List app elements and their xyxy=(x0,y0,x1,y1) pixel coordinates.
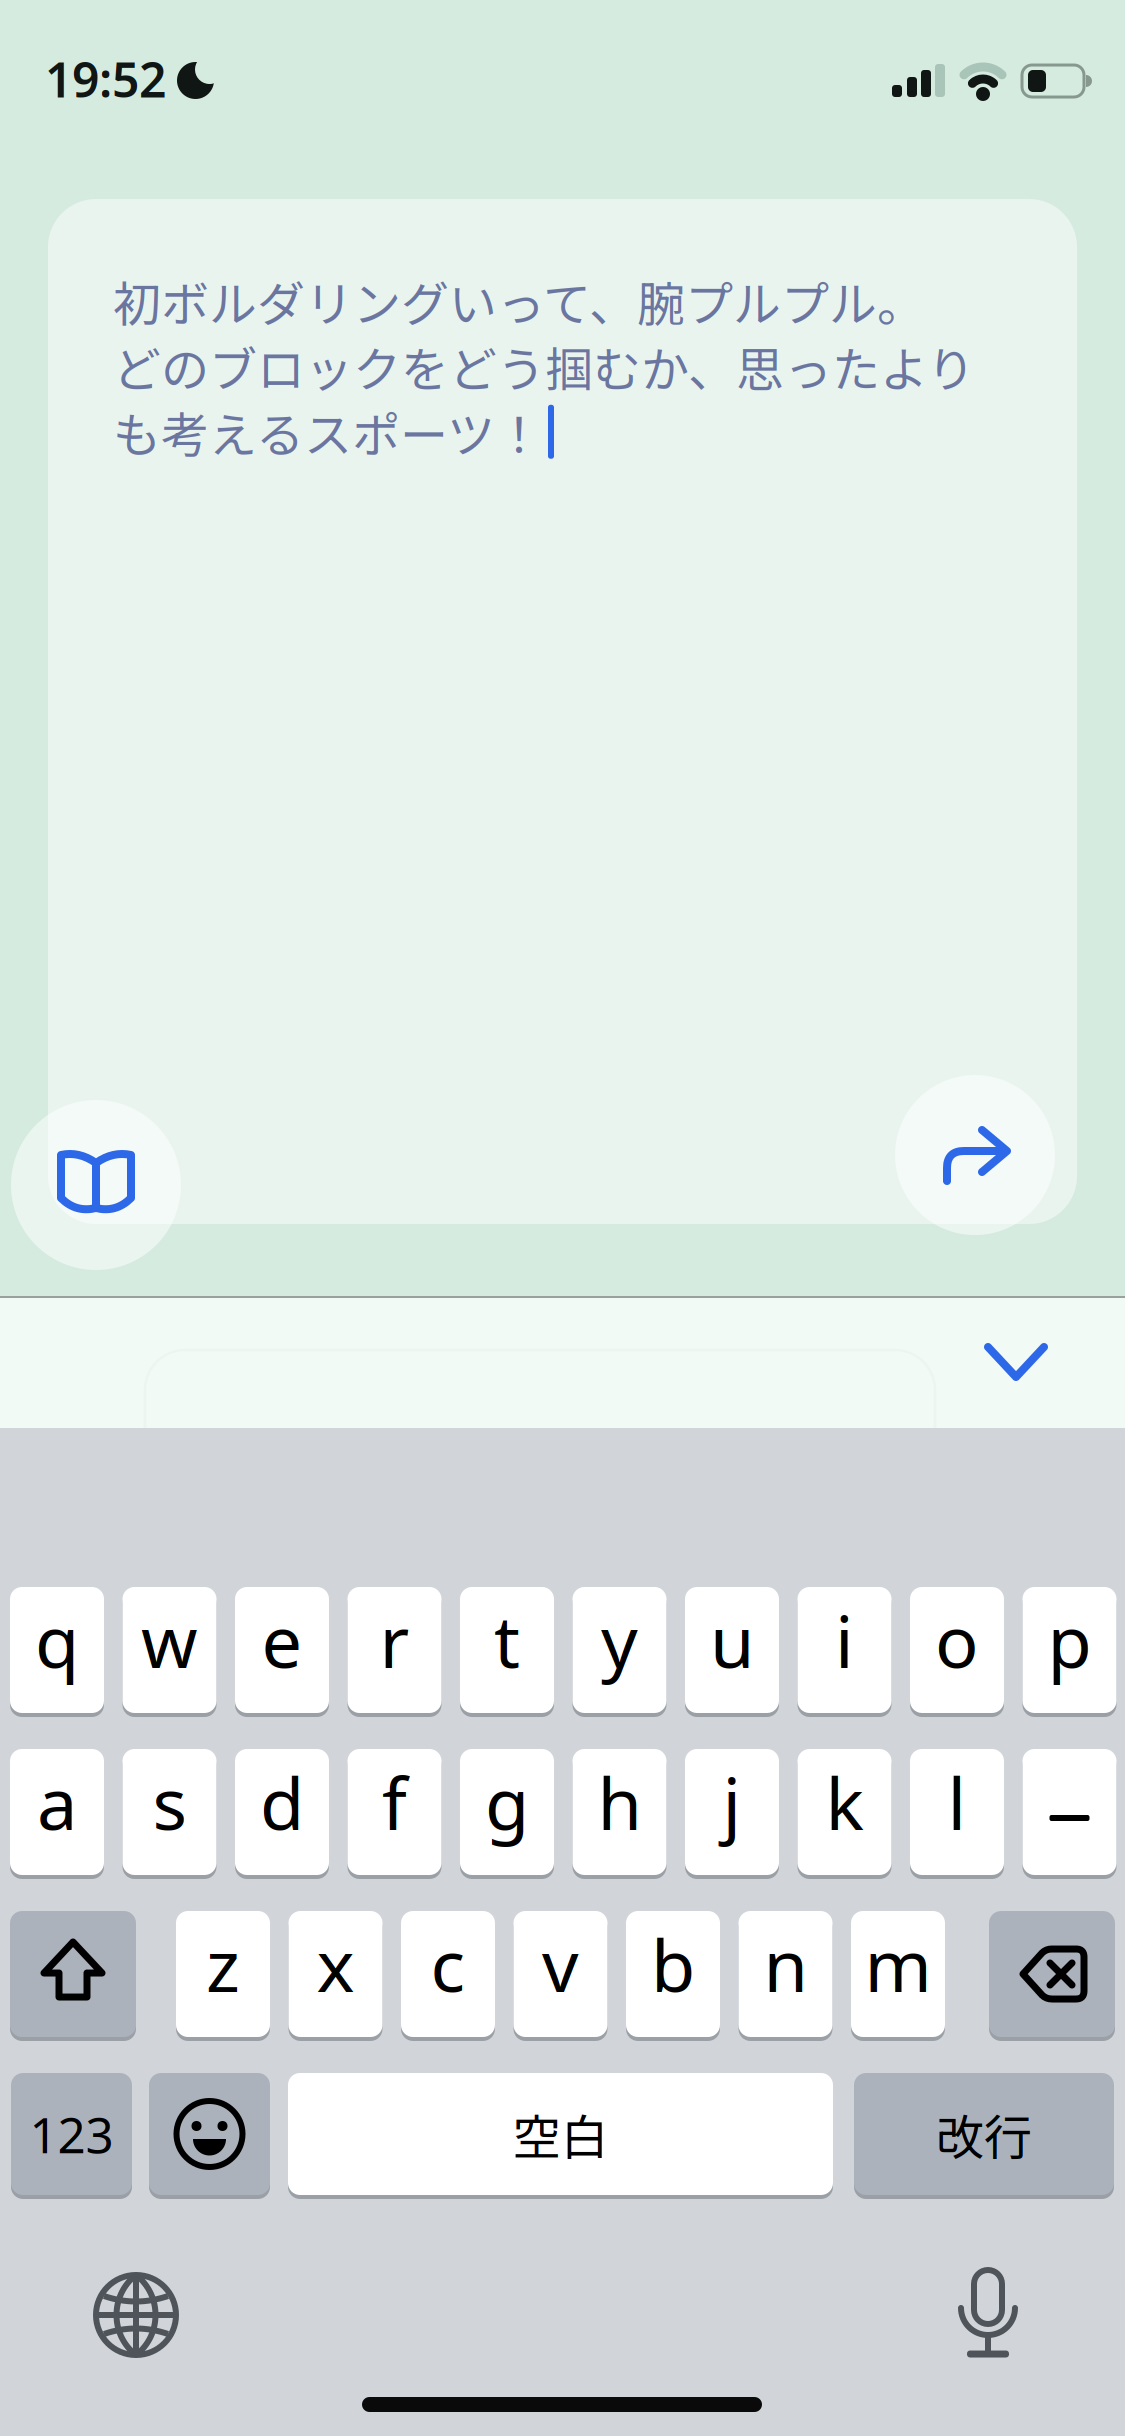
staticText: も考えるスポーツ！ xyxy=(113,397,543,466)
staticText: t xyxy=(494,1592,520,1688)
button[interactable]: e xyxy=(235,1587,329,1713)
button[interactable]: 改行 xyxy=(854,2073,1114,2195)
button[interactable]: x xyxy=(288,1911,382,2037)
staticText: 123 xyxy=(29,2101,113,2167)
button[interactable]: o xyxy=(910,1587,1004,1713)
button[interactable]: Shift xyxy=(10,1911,136,2037)
button[interactable]: q xyxy=(10,1587,104,1713)
button[interactable]: s xyxy=(122,1749,216,1875)
staticText: u xyxy=(710,1592,754,1688)
button[interactable]: y xyxy=(572,1587,666,1713)
staticText: d xyxy=(260,1754,304,1850)
button[interactable]: 空白 xyxy=(288,2073,833,2195)
button[interactable]: p xyxy=(1022,1587,1116,1713)
button[interactable]: m xyxy=(851,1911,945,2037)
staticText: a xyxy=(37,1754,77,1850)
staticText: h xyxy=(597,1754,641,1850)
staticText: g xyxy=(485,1754,529,1850)
button[interactable]: l xyxy=(910,1749,1004,1875)
staticText: k xyxy=(825,1754,863,1850)
button[interactable]: Delete xyxy=(989,1911,1115,2037)
staticText: q xyxy=(35,1592,79,1688)
button[interactable]: Dictation xyxy=(938,2261,1038,2361)
button[interactable]: a xyxy=(10,1749,104,1875)
button[interactable]: t xyxy=(460,1587,554,1713)
button[interactable]: v xyxy=(513,1911,607,2037)
staticText: p xyxy=(1047,1592,1091,1688)
button[interactable]: c xyxy=(401,1911,495,2037)
staticText: 初ボルダリングいって、腕プルプル。 xyxy=(113,266,925,335)
button[interactable]: ー xyxy=(1022,1749,1116,1875)
staticText: n xyxy=(763,1916,807,2012)
button[interactable]: i xyxy=(797,1587,891,1713)
staticText: i xyxy=(835,1592,854,1688)
button[interactable]: d xyxy=(235,1749,329,1875)
button[interactable]: n xyxy=(738,1911,832,2037)
button[interactable]: Emoji xyxy=(149,2073,270,2195)
button[interactable]: f xyxy=(347,1749,441,1875)
staticText: z xyxy=(206,1916,240,2012)
button[interactable]: k xyxy=(797,1749,891,1875)
staticText: y xyxy=(601,1592,638,1688)
staticText: j xyxy=(722,1754,741,1850)
button[interactable]: 123 xyxy=(11,2073,132,2195)
staticText: 19:52 xyxy=(45,47,166,111)
staticText: どのブロックをどう掴むか、思ったより xyxy=(113,331,975,401)
staticText: m xyxy=(864,1916,931,2012)
staticText: s xyxy=(152,1754,186,1850)
staticText: l xyxy=(947,1754,966,1850)
staticText: w xyxy=(141,1592,198,1688)
staticText: 改行 xyxy=(936,2099,1032,2169)
button[interactable]: r xyxy=(347,1587,441,1713)
button[interactable]: b xyxy=(626,1911,720,2037)
button[interactable]: w xyxy=(122,1587,216,1713)
button[interactable]: g xyxy=(460,1749,554,1875)
button[interactable]: j xyxy=(685,1749,779,1875)
staticText: v xyxy=(542,1916,579,2012)
staticText: b xyxy=(651,1916,695,2012)
button[interactable]: Journal prompts xyxy=(11,1100,181,1270)
button[interactable]: z xyxy=(176,1911,270,2037)
button[interactable]: Save entry xyxy=(895,1075,1055,1235)
staticText: f xyxy=(382,1754,407,1850)
button[interactable]: h xyxy=(572,1749,666,1875)
button[interactable]: Next keyboard xyxy=(86,2265,186,2365)
staticText: o xyxy=(935,1592,979,1688)
button[interactable]: u xyxy=(685,1587,779,1713)
button[interactable]: Dismiss keyboard xyxy=(966,1313,1066,1413)
staticText: r xyxy=(379,1592,409,1688)
staticText: x xyxy=(316,1916,354,2012)
staticText: c xyxy=(430,1916,465,2012)
staticText: e xyxy=(261,1592,302,1688)
staticText: 空白 xyxy=(512,2099,608,2169)
